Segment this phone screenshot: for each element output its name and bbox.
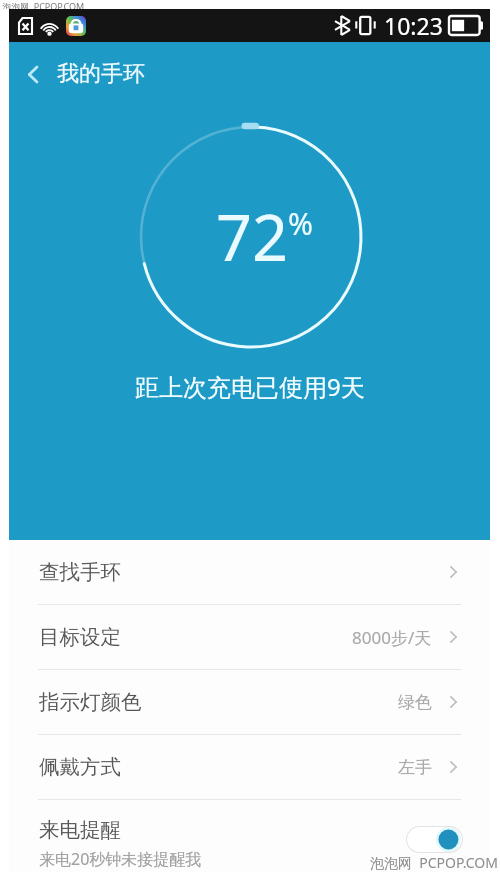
- staticText: 目标设定: [39, 624, 121, 650]
- staticText: 绿色: [398, 692, 432, 713]
- staticText: 来电20秒钟未接提醒我: [39, 848, 202, 870]
- staticText: 72: [216, 194, 289, 280]
- staticText: 来电提醒: [39, 817, 121, 843]
- staticText: 距上次充电已使用9天: [135, 370, 365, 403]
- staticText: %: [288, 203, 313, 244]
- staticText: 佩戴方式: [39, 754, 121, 780]
- staticText: 泡泡网 PCPOP.COM: [2, 0, 85, 9]
- staticText: 泡泡网 PCPOP.COM: [370, 853, 498, 872]
- staticText: 查找手环: [39, 559, 121, 585]
- button[interactable]: 来电提醒: [9, 800, 490, 872]
- staticText: 我的手环: [57, 60, 145, 88]
- button[interactable]: 目标设定: [9, 605, 490, 669]
- button[interactable]: Toggle call reminder: [406, 826, 463, 853]
- button[interactable]: Back: [9, 46, 57, 102]
- button[interactable]: 查找手环: [9, 540, 490, 604]
- staticText: 指示灯颜色: [39, 689, 142, 715]
- staticText: 10:23: [384, 10, 443, 41]
- staticText: 左手: [398, 757, 432, 778]
- button[interactable]: 佩戴方式: [9, 735, 490, 799]
- button[interactable]: 指示灯颜色: [9, 670, 490, 734]
- staticText: 8000步/天: [352, 626, 432, 649]
